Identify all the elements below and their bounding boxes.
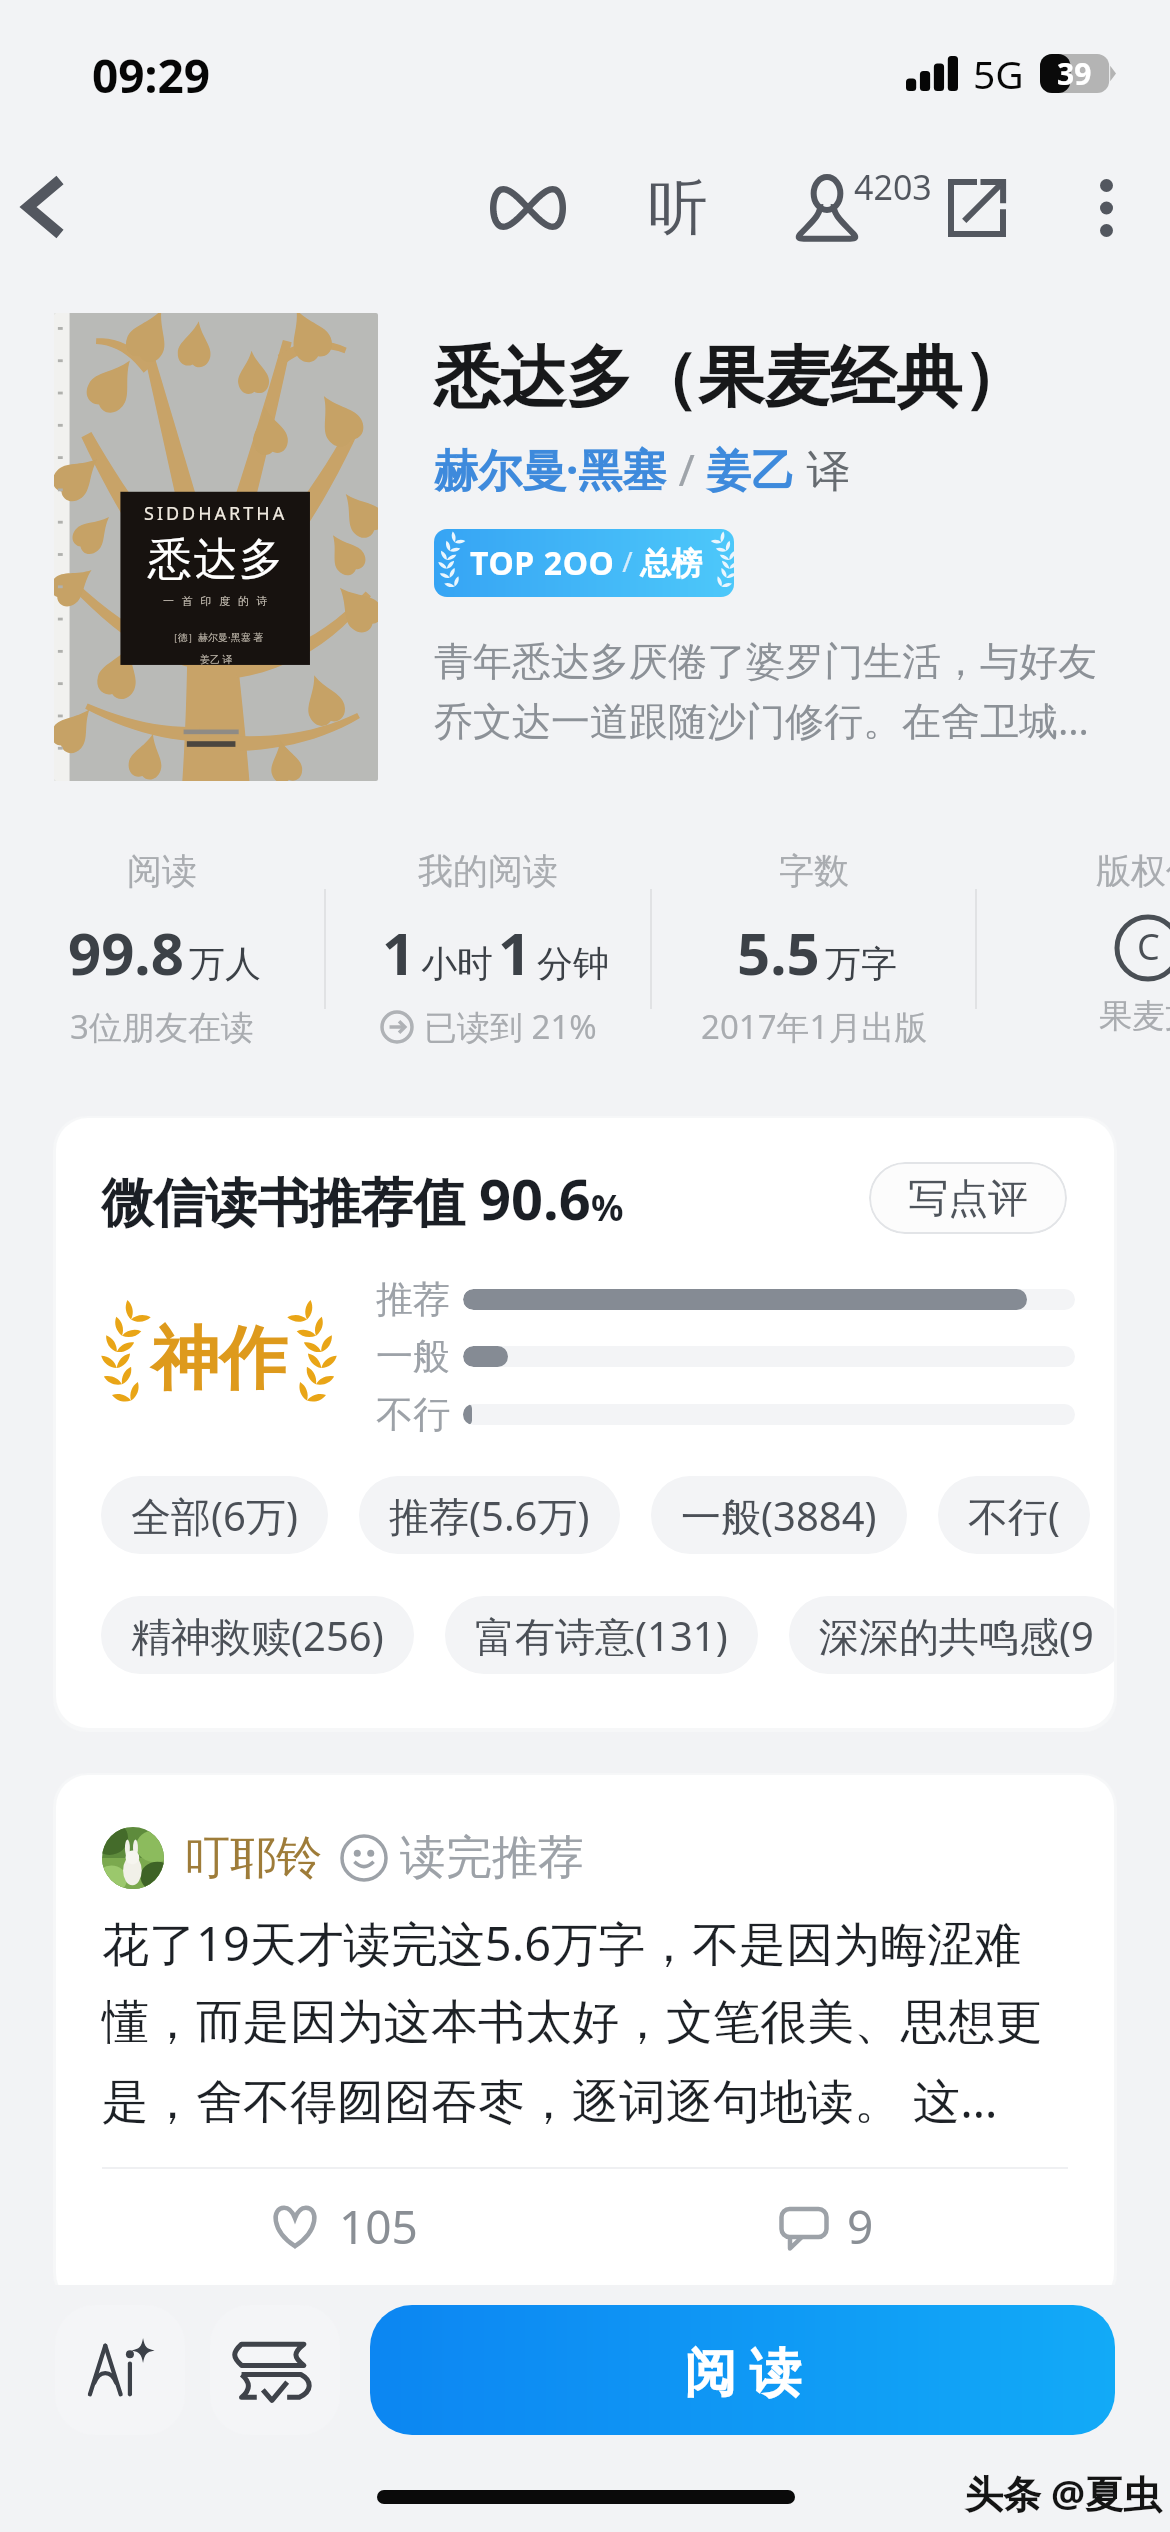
button[interactable]: 富有诗意(131) — [445, 1596, 758, 1674]
button[interactable]: AI assistant — [55, 2305, 185, 2435]
staticText: 青年悉达多厌倦了婆罗门生活，与好友乔文达一道跟随沙门修行。在舍卫城… — [434, 637, 1134, 746]
staticText: 微信读书推荐值 — [101, 1165, 479, 1236]
staticText: 5.5 — [737, 913, 820, 992]
staticText: 1 — [498, 913, 532, 992]
staticText: 不行( — [968, 1488, 1060, 1543]
staticText: 写点评 — [908, 1173, 1028, 1223]
staticText: 悉达多（果麦经典） — [434, 336, 1028, 419]
button[interactable]: 版权信 — [986, 849, 1170, 1037]
staticText: 小时 — [421, 941, 493, 986]
staticText: % — [591, 1183, 624, 1232]
staticText: 姜乙 — [707, 444, 795, 499]
staticText: 90.6 — [479, 1160, 591, 1236]
staticText: / — [615, 542, 640, 580]
button[interactable]: 9 — [585, 2195, 1068, 2258]
staticText: ［德］赫尔曼·黑塞 著 — [168, 630, 264, 644]
staticText: 一 首 印 度 的 诗 — [163, 593, 270, 608]
staticText: 赫尔曼·黑塞 — [434, 439, 667, 499]
staticText: 精神救赎(256) — [131, 1608, 384, 1663]
button[interactable]: Unlimited card — [478, 158, 578, 258]
staticText: 2017年1月出版 — [701, 1004, 928, 1049]
button[interactable]: 全部(6万) — [101, 1476, 328, 1554]
staticText: 字数 — [779, 849, 849, 893]
staticText: SIDDHARTHA — [144, 501, 288, 526]
staticText: 悉达多 — [148, 532, 285, 587]
button[interactable]: Share — [927, 158, 1027, 258]
button[interactable]: 深深的共鸣感(9 — [789, 1596, 1114, 1674]
button[interactable]: TOP 200 overall ranking — [434, 529, 734, 597]
staticText: 09:29 — [92, 44, 211, 107]
button[interactable]: 105 — [102, 2195, 585, 2258]
staticText: 4203 — [854, 164, 932, 210]
button[interactable]: 阅读 — [0, 849, 324, 1049]
staticText: 富有诗意(131) — [475, 1608, 728, 1663]
staticText: 听 — [648, 170, 708, 246]
staticText: 阅读 — [127, 849, 197, 893]
staticText: 万字 — [825, 941, 897, 986]
button[interactable]: 阅 读 — [370, 2305, 1115, 2435]
staticText: 花了19天才读完这5.6万字，不是因为晦涩难懂，而是因为这本书太好，文笔很美、思… — [102, 1911, 1070, 2132]
staticText: 全部(6万) — [131, 1488, 298, 1543]
staticText: 3位朋友在读 — [70, 1004, 254, 1049]
button[interactable]: Back — [4, 167, 84, 247]
staticText: 一般(3884) — [681, 1488, 877, 1543]
staticText: 总榜 — [640, 544, 702, 583]
staticText: 不行 — [376, 1391, 450, 1438]
staticText: 分钟 — [537, 941, 609, 986]
staticText: 姜乙 译 — [200, 652, 233, 666]
button[interactable]: 写点评 — [869, 1162, 1067, 1234]
staticText: TOP 2OO — [470, 541, 615, 585]
button[interactable]: More options — [1056, 158, 1156, 258]
staticText: 一般 — [376, 1333, 450, 1380]
staticText: / — [667, 439, 707, 499]
staticText: 5G — [973, 47, 1024, 100]
staticText: 我的阅读 — [418, 849, 558, 893]
staticText: 99.8 — [68, 913, 184, 992]
staticText: 神作 — [151, 1317, 287, 1403]
button[interactable]: 推荐(5.6万) — [359, 1476, 620, 1554]
staticText: 叮耶铃 — [184, 1829, 322, 1887]
staticText: 推荐(5.6万) — [389, 1488, 590, 1543]
button[interactable]: Book cover: Siddhartha — [54, 313, 378, 781]
button[interactable]: Listen — [628, 158, 728, 258]
staticText: 深深的共鸣感(9 — [819, 1608, 1094, 1663]
staticText: 推荐 — [376, 1276, 450, 1323]
button[interactable]: 一般(3884) — [651, 1476, 907, 1554]
button[interactable]: 字数 — [652, 849, 976, 1049]
button[interactable]: 4203 readers — [778, 158, 928, 258]
staticText: 版权信 — [1096, 849, 1170, 893]
button[interactable]: Add to shelf — [210, 2305, 340, 2435]
button[interactable]: 我的阅读 — [326, 849, 650, 1049]
staticText: 39 — [1057, 53, 1092, 92]
staticText: 已读到 21% — [424, 1004, 597, 1049]
button[interactable]: 精神救赎(256) — [101, 1596, 414, 1674]
staticText: 万人 — [189, 941, 261, 986]
staticText: 9 — [847, 2195, 874, 2258]
button[interactable]: 不行( — [938, 1476, 1090, 1554]
staticText: 1 — [382, 913, 416, 992]
staticText: 阅 读 — [684, 2335, 802, 2406]
staticText: 头条 @夏虫 — [965, 2467, 1162, 2519]
staticText: 果麦文 — [1099, 995, 1170, 1037]
staticText: C — [1137, 922, 1160, 971]
staticText: 译 — [795, 439, 851, 499]
staticText: 读完推荐 — [400, 1829, 584, 1887]
staticText: 105 — [339, 2195, 418, 2258]
